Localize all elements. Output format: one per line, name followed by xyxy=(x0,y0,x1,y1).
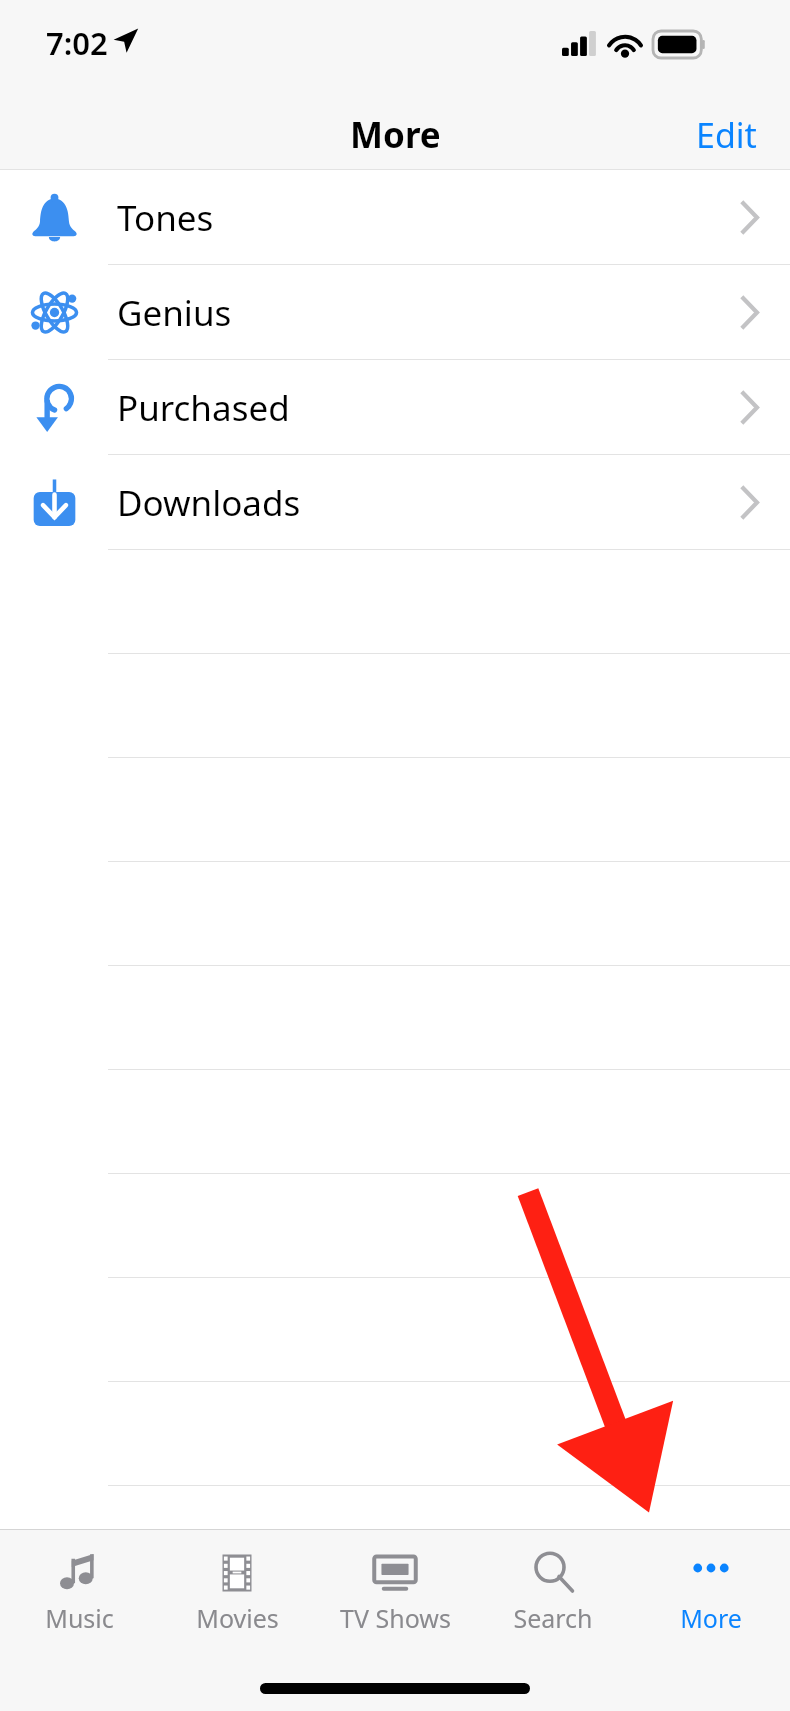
staticText: Tones xyxy=(117,194,214,242)
button[interactable]: Downloads xyxy=(0,455,790,550)
button[interactable]: Purchased xyxy=(0,360,790,455)
staticText: Movies xyxy=(196,1601,279,1635)
staticText: Purchased xyxy=(117,384,290,432)
button[interactable]: Search xyxy=(474,1530,632,1653)
staticText: More xyxy=(680,1601,742,1635)
button[interactable]: Movies xyxy=(158,1530,316,1653)
button[interactable]: Genius xyxy=(0,265,790,360)
button[interactable]: TV Shows xyxy=(316,1530,474,1653)
button[interactable]: Edit xyxy=(663,101,790,169)
staticText: Search xyxy=(513,1601,593,1635)
staticText: 7:02 xyxy=(46,22,108,64)
button[interactable]: Music xyxy=(0,1530,158,1653)
staticText: Downloads xyxy=(117,479,301,527)
staticText: Edit xyxy=(696,112,757,158)
staticText: Genius xyxy=(117,289,232,337)
staticText: TV Shows xyxy=(340,1601,451,1635)
staticText: More xyxy=(350,111,441,159)
staticText: Music xyxy=(45,1601,114,1635)
button[interactable]: More xyxy=(632,1530,790,1653)
button[interactable]: Tones xyxy=(0,170,790,265)
